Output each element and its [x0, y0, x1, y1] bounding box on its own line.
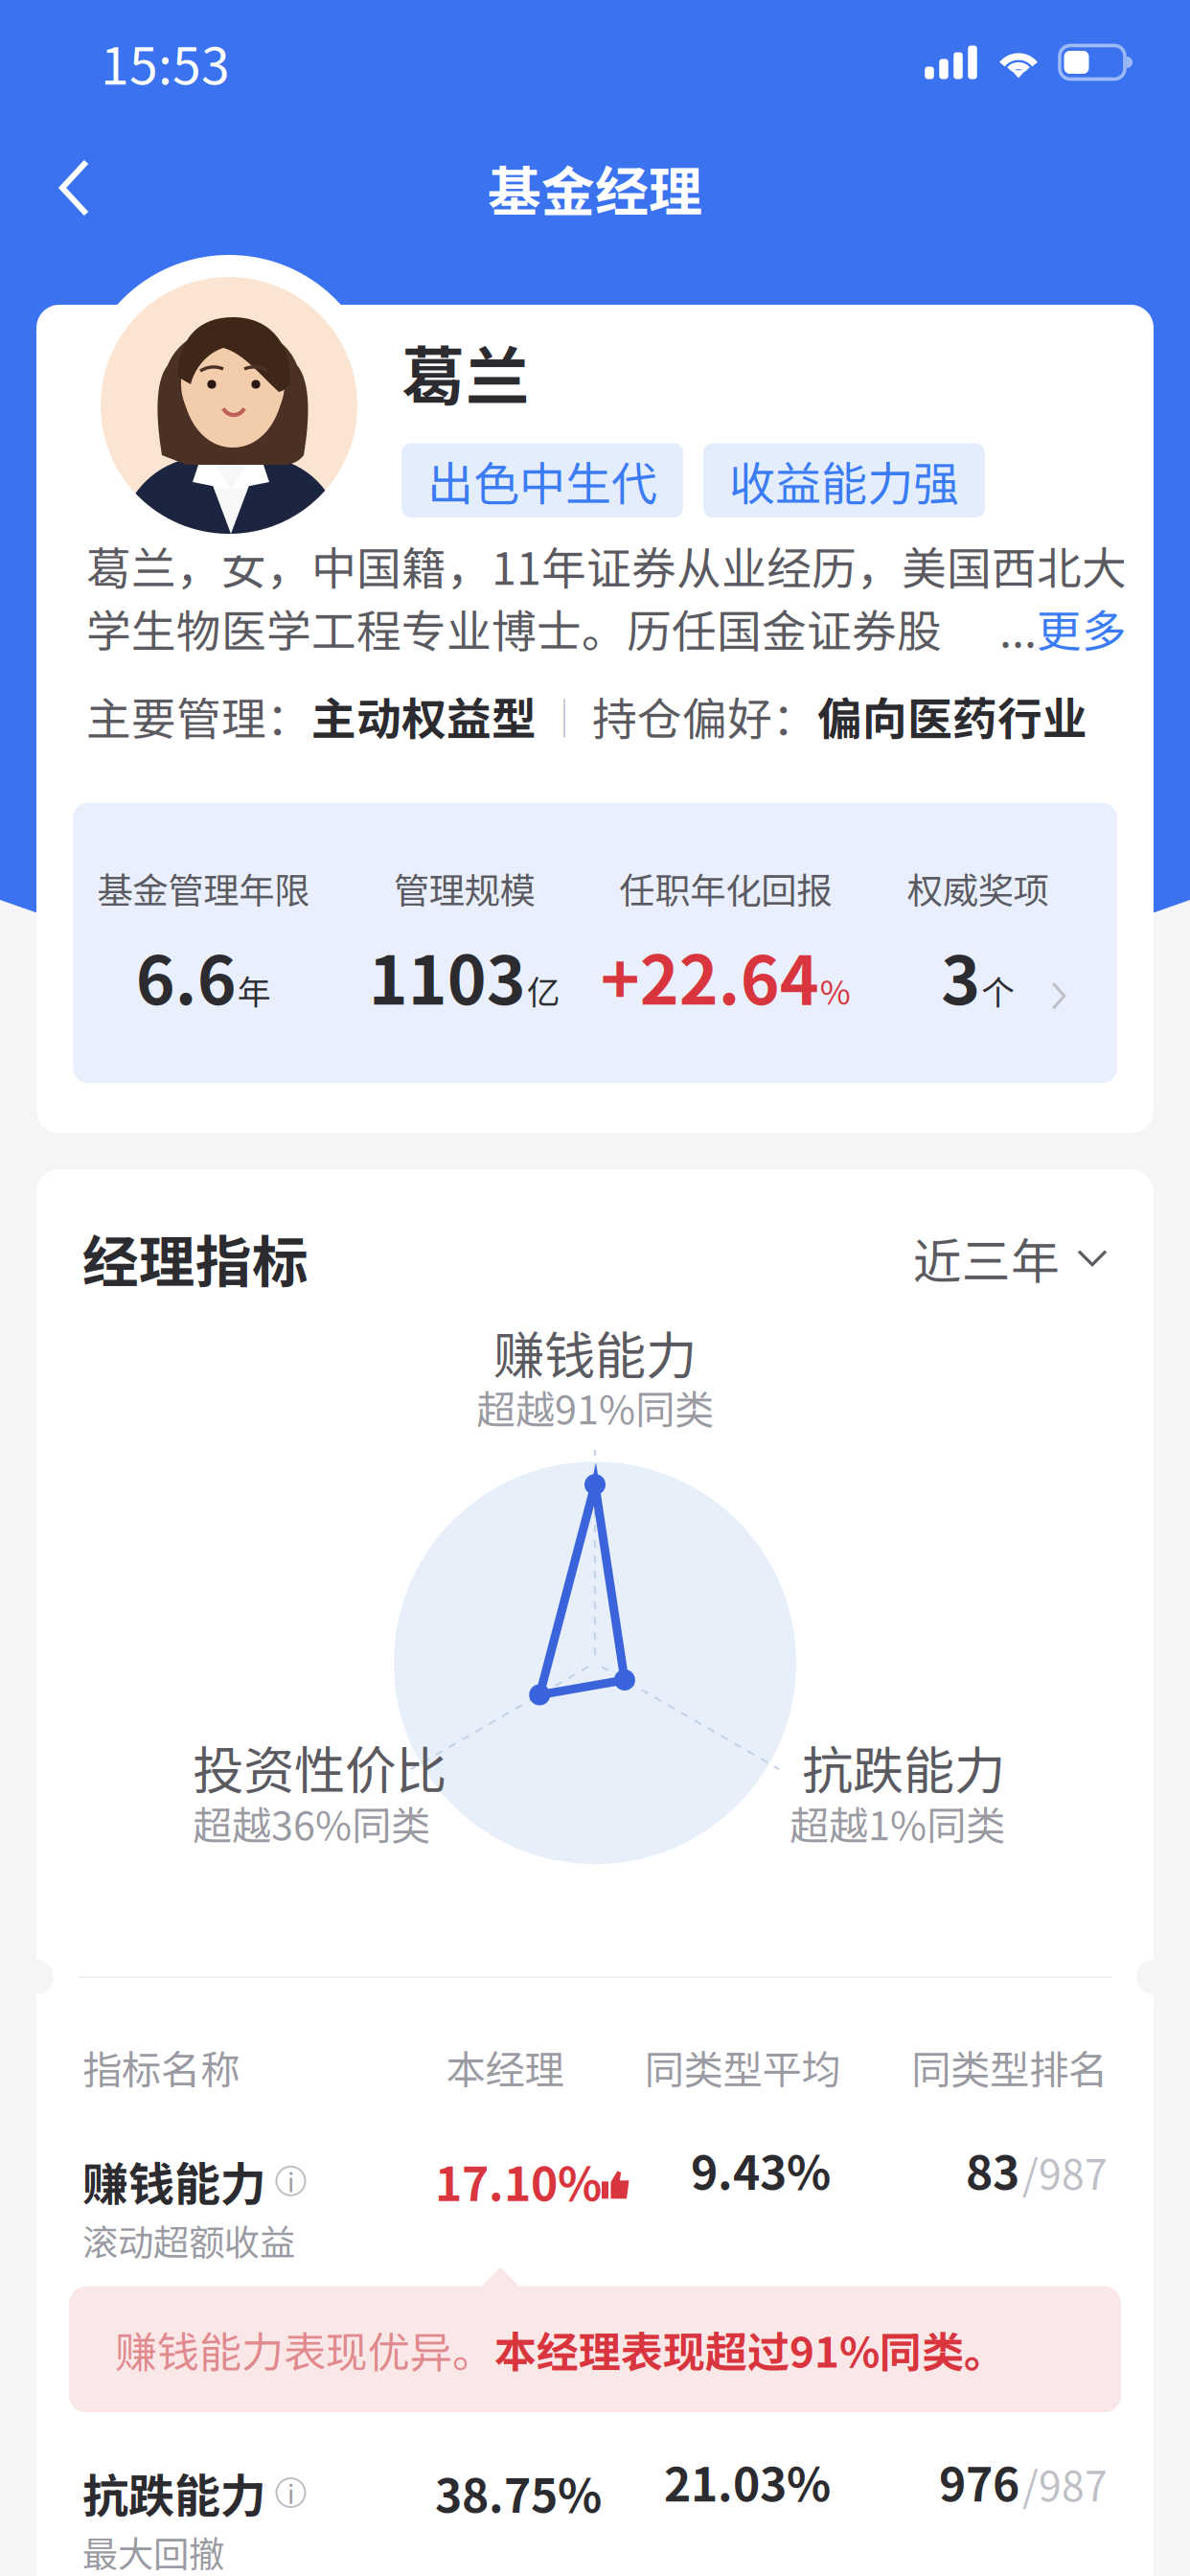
button[interactable]: 基金管理年限: [73, 803, 1117, 1083]
staticText: +22.64: [601, 927, 819, 1024]
staticText: 抗跌能力: [802, 1730, 1005, 1804]
staticText: 持仓偏好：: [592, 683, 817, 748]
staticText: 9.43%: [691, 2136, 831, 2203]
staticText: 超越36%同类: [193, 1794, 430, 1852]
staticText: 超越1%同类: [790, 1794, 1005, 1852]
staticText: 经理指标: [82, 1217, 309, 1299]
staticText: 个: [981, 966, 1015, 1014]
staticText: 最大回撤: [82, 2526, 224, 2576]
button[interactable]: 近三年: [913, 1223, 1108, 1293]
staticText: 近三年: [913, 1223, 1060, 1293]
staticText: 投资性价比: [193, 1730, 446, 1804]
staticText: 83: [966, 2136, 1019, 2203]
staticText: 权威奖项: [907, 862, 1049, 914]
staticText: i: [287, 2474, 294, 2511]
staticText: 亿: [527, 966, 560, 1014]
staticText: 976: [939, 2448, 1019, 2515]
staticText: 赚钱能力表现优异。: [115, 2319, 494, 2380]
staticText: 本经理表现超过91%同类。: [494, 2319, 1006, 2380]
staticText: i: [287, 2162, 294, 2199]
staticText: 滚动超额收益: [82, 2214, 295, 2266]
staticText: 本经理: [446, 2039, 564, 2096]
staticText: 赚钱能力: [82, 2148, 266, 2214]
staticText: 更多: [1037, 596, 1127, 660]
staticText: 管理规模: [394, 862, 535, 914]
staticText: 17.10%: [435, 2148, 602, 2214]
staticText: 同类型平均: [644, 2039, 841, 2096]
staticText: 葛兰: [401, 326, 530, 418]
staticText: ｜: [537, 688, 592, 744]
staticText: %: [820, 966, 851, 1014]
staticText: 1103: [369, 927, 526, 1024]
staticText: 3: [941, 927, 980, 1024]
staticText: 抗跌能力: [82, 2459, 266, 2526]
staticText: 6.6: [136, 927, 236, 1024]
staticText: 出色中生代: [427, 447, 657, 514]
staticText: 同类型排名: [911, 2039, 1108, 2096]
staticText: 主要管理：: [86, 683, 311, 748]
staticText: 超越91%同类: [476, 1378, 714, 1436]
staticText: 21.03%: [664, 2448, 831, 2515]
staticText: 指标名称: [82, 2039, 240, 2096]
staticText: 15:53: [101, 25, 230, 99]
staticText: 偏向医药行业: [817, 683, 1087, 748]
staticText: /987: [1022, 2142, 1108, 2201]
staticText: ...: [999, 596, 1037, 660]
staticText: /987: [1022, 2454, 1108, 2513]
staticText: 38.75%: [435, 2459, 602, 2526]
button[interactable]: Back: [0, 136, 123, 240]
staticText: 年: [237, 966, 271, 1014]
staticText: 任职年化回报: [619, 862, 832, 914]
staticText: 收益能力强: [729, 447, 959, 514]
staticText: 学生物医学工程专业博士。历任国金证券股: [86, 596, 942, 660]
staticText: 葛兰，女，中国籍，11年证券从业经历，美国西北大: [86, 533, 1127, 598]
staticText: 基金经理: [488, 149, 702, 227]
staticText: 基金管理年限: [97, 862, 310, 914]
staticText: 主动权益型: [311, 683, 537, 748]
button[interactable]: 更多: [1037, 596, 1127, 660]
staticText: 赚钱能力: [493, 1315, 697, 1389]
